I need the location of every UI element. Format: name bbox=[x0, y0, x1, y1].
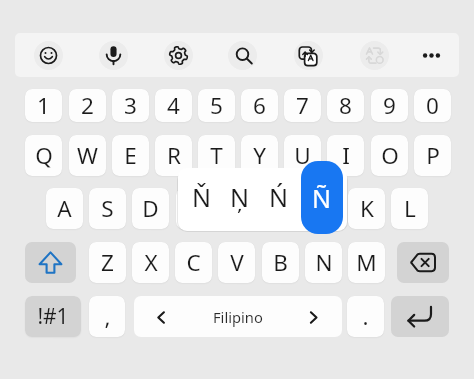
staticText: F bbox=[189, 193, 201, 224]
staticText: R bbox=[167, 140, 181, 171]
staticText: 9 bbox=[383, 90, 396, 121]
button[interactable]: Q bbox=[25, 135, 62, 176]
button[interactable]: Ń bbox=[259, 170, 299, 223]
button[interactable]: G bbox=[219, 188, 256, 229]
staticText: D bbox=[142, 193, 159, 224]
button[interactable]: Text correction bbox=[360, 41, 389, 70]
staticText: H bbox=[272, 193, 289, 224]
button[interactable]: C bbox=[175, 242, 212, 283]
staticText: E bbox=[124, 140, 137, 171]
staticText: Q bbox=[35, 140, 53, 171]
staticText: T bbox=[210, 140, 223, 171]
button[interactable]: O bbox=[371, 135, 408, 176]
staticText: M bbox=[356, 247, 377, 278]
button[interactable]: Enter bbox=[391, 296, 449, 337]
button[interactable]: S bbox=[89, 188, 126, 229]
staticText: 1 bbox=[37, 90, 50, 121]
button[interactable]: Ņ bbox=[220, 170, 260, 223]
button[interactable]: X bbox=[132, 242, 169, 283]
button[interactable]: I bbox=[327, 135, 364, 176]
staticText: U bbox=[294, 140, 311, 171]
staticText: 6 bbox=[253, 90, 266, 121]
button[interactable]: E bbox=[112, 135, 149, 176]
staticText: Ň bbox=[192, 180, 212, 214]
button[interactable]: 2 bbox=[69, 89, 106, 122]
staticText: Ņ bbox=[230, 180, 250, 214]
button[interactable]: W bbox=[69, 135, 106, 176]
staticText: . bbox=[362, 301, 369, 332]
button[interactable]: A bbox=[46, 188, 83, 229]
staticText: 7 bbox=[296, 90, 309, 121]
button[interactable]: K bbox=[348, 188, 385, 229]
staticText: I bbox=[342, 140, 350, 171]
button[interactable]: Ň bbox=[182, 170, 222, 223]
button[interactable]: !#1 bbox=[25, 296, 81, 337]
button[interactable]: Voice input bbox=[99, 41, 128, 70]
staticText: S bbox=[101, 193, 114, 224]
staticText: 8 bbox=[339, 90, 352, 121]
button[interactable]: Shift bbox=[25, 242, 76, 283]
staticText: 0 bbox=[426, 90, 439, 121]
staticText: P bbox=[426, 140, 440, 171]
button[interactable]: J bbox=[305, 188, 342, 229]
button[interactable]: Translate bbox=[294, 41, 323, 70]
button[interactable]: More options bbox=[416, 41, 447, 70]
button[interactable]: , bbox=[89, 296, 125, 337]
staticText: B bbox=[273, 247, 288, 278]
button[interactable]: Y bbox=[241, 135, 278, 176]
staticText: O bbox=[381, 140, 399, 171]
button[interactable]: B bbox=[262, 242, 299, 283]
button[interactable]: 1 bbox=[25, 89, 62, 122]
staticText: V bbox=[230, 247, 244, 278]
button[interactable]: Emoji bbox=[34, 41, 63, 70]
staticText: 5 bbox=[210, 90, 223, 121]
button[interactable]: 9 bbox=[371, 89, 408, 122]
staticText: K bbox=[360, 193, 374, 224]
button[interactable]: Search bbox=[228, 41, 257, 70]
button[interactable]: 0 bbox=[414, 89, 451, 122]
button[interactable]: Ñ bbox=[301, 161, 343, 234]
button[interactable]: F bbox=[176, 188, 213, 229]
staticText: C bbox=[186, 247, 201, 278]
staticText: G bbox=[229, 193, 246, 224]
staticText: Ń bbox=[269, 180, 289, 214]
staticText: W bbox=[77, 140, 98, 171]
button[interactable]: 8 bbox=[327, 89, 364, 122]
staticText: X bbox=[144, 247, 158, 278]
button[interactable]: V bbox=[218, 242, 255, 283]
staticText: 2 bbox=[81, 90, 94, 121]
button[interactable]: U bbox=[284, 135, 321, 176]
button[interactable]: 3 bbox=[112, 89, 149, 122]
button[interactable]: L bbox=[391, 188, 428, 229]
staticText: N bbox=[315, 247, 333, 278]
button[interactable]: H bbox=[262, 188, 299, 229]
staticText: , bbox=[104, 301, 111, 332]
button[interactable]: . bbox=[347, 296, 384, 337]
staticText: J bbox=[320, 193, 327, 224]
staticText: !#1 bbox=[37, 302, 69, 331]
button[interactable]: Z bbox=[89, 242, 126, 283]
button[interactable]: 4 bbox=[155, 89, 192, 122]
staticText: 3 bbox=[124, 90, 137, 121]
staticText: Y bbox=[253, 140, 266, 171]
button[interactable]: N bbox=[305, 242, 342, 283]
button[interactable]: Backspace bbox=[397, 242, 449, 283]
staticText: 4 bbox=[167, 90, 180, 121]
button[interactable]: R bbox=[155, 135, 192, 176]
staticText: Filipino bbox=[213, 307, 263, 327]
button[interactable]: 5 bbox=[198, 89, 235, 122]
staticText: A bbox=[57, 193, 72, 224]
staticText: L bbox=[404, 193, 416, 224]
button[interactable]: Filipino bbox=[134, 296, 342, 337]
button[interactable]: Settings bbox=[164, 41, 193, 70]
button[interactable]: T bbox=[198, 135, 235, 176]
button[interactable]: 6 bbox=[241, 89, 278, 122]
staticText: Ñ bbox=[312, 181, 332, 215]
button[interactable]: 7 bbox=[284, 89, 321, 122]
button[interactable]: P bbox=[414, 135, 451, 176]
staticText: Z bbox=[101, 247, 114, 278]
button[interactable]: M bbox=[348, 242, 385, 283]
button[interactable]: D bbox=[132, 188, 169, 229]
